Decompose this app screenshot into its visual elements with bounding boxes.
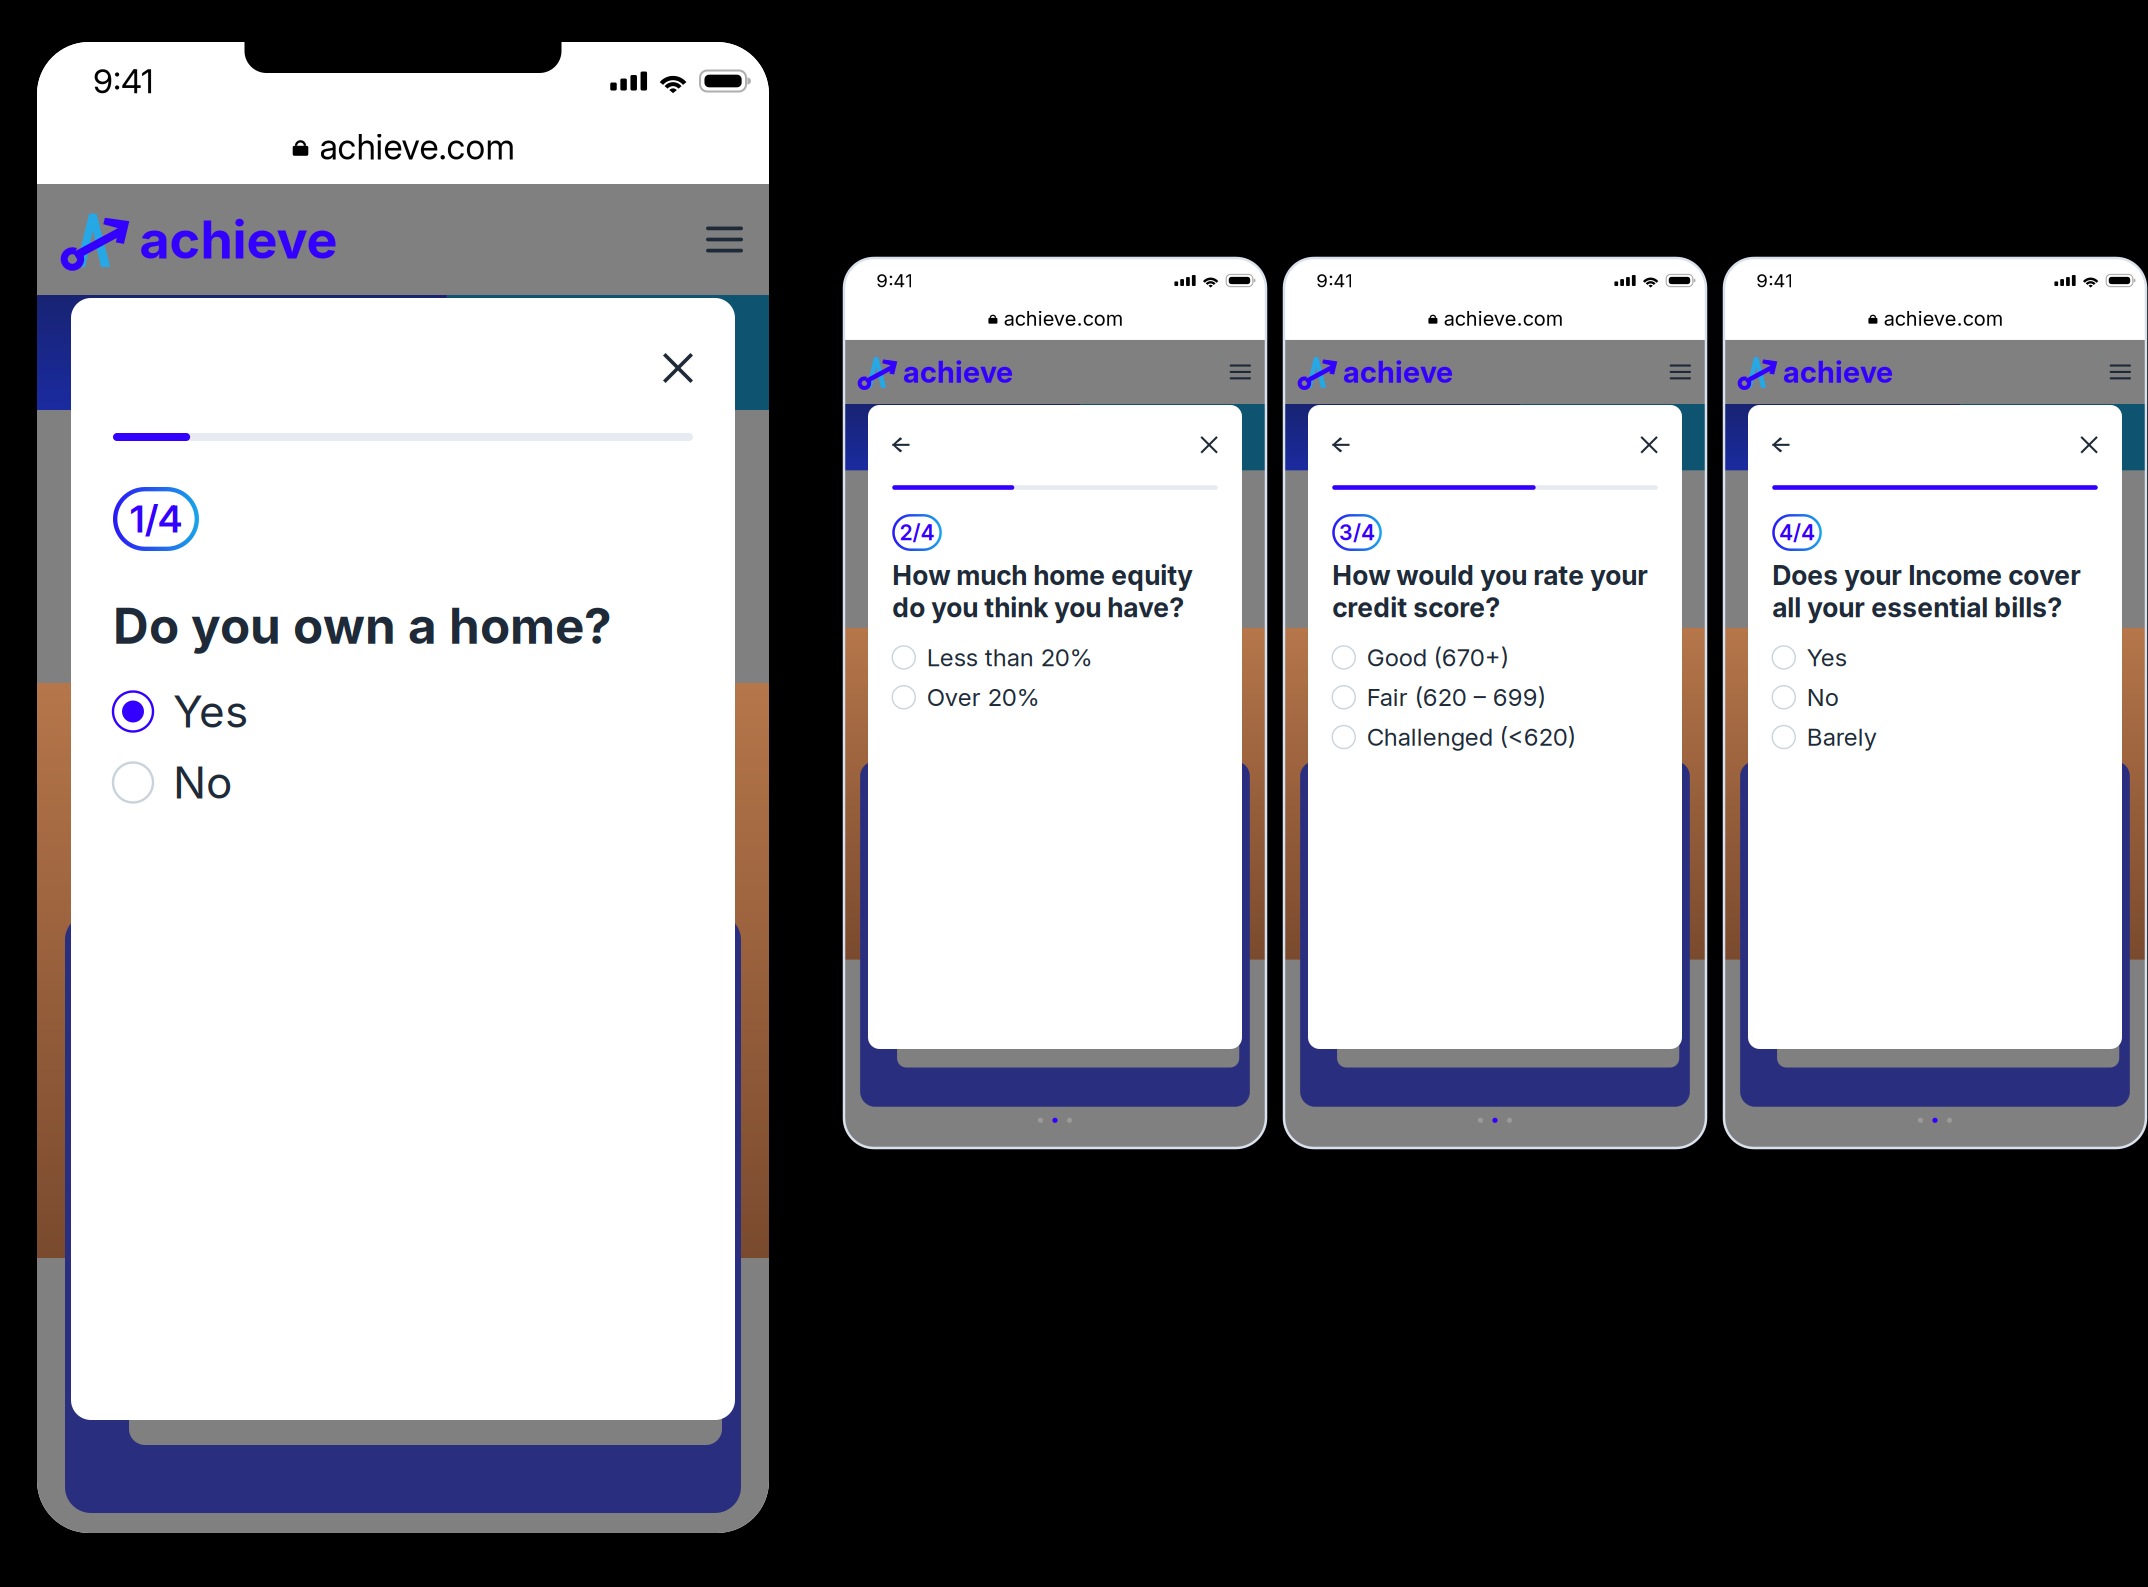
staticText: How would you rate your credit score? <box>1332 559 1648 624</box>
staticText: achieve.com <box>1444 306 1563 331</box>
staticText: Fair (620 – 699) <box>1367 683 1546 712</box>
button[interactable]: Good (670+) <box>1332 637 1658 677</box>
staticText: No <box>1807 683 1839 712</box>
staticText: No <box>173 756 232 809</box>
staticText: 4/4 <box>1779 520 1815 545</box>
staticText: Do you own a home? <box>113 596 612 656</box>
button[interactable]: Less than 20% <box>892 637 1218 677</box>
staticText: 2/4 <box>899 520 934 545</box>
button[interactable]: Close <box>2075 433 2098 456</box>
staticText: 3/4 <box>1339 520 1375 545</box>
staticText: achieve <box>903 354 1013 390</box>
staticText: Over 20% <box>927 683 1040 712</box>
button[interactable]: Over 20% <box>892 677 1218 717</box>
button[interactable]: Back <box>892 433 915 456</box>
staticText: 9:41 <box>876 269 913 292</box>
staticText: Yes <box>173 685 248 738</box>
staticText: achieve.com <box>319 126 515 168</box>
staticText: achieve <box>1783 354 1893 390</box>
staticText: Good (670+) <box>1367 643 1509 672</box>
staticText: Barely <box>1807 722 1877 751</box>
button[interactable]: Yes <box>113 676 693 747</box>
staticText: How much home equity do you think you ha… <box>892 559 1193 624</box>
button[interactable]: Close <box>1635 433 1658 456</box>
staticText: 1/4 <box>130 496 182 542</box>
button[interactable]: No <box>1772 677 2098 717</box>
button[interactable]: Yes <box>1772 637 2098 677</box>
staticText: 9:41 <box>1316 269 1353 292</box>
staticText: achieve.com <box>1004 306 1123 331</box>
staticText: Does your Income cover all your essentia… <box>1772 559 2081 624</box>
button[interactable]: Back <box>1332 433 1355 456</box>
staticText: Yes <box>1807 643 1847 672</box>
staticText: Challenged (<620) <box>1367 722 1576 751</box>
button[interactable]: Barely <box>1772 717 2098 757</box>
button[interactable]: Back <box>1772 433 1795 456</box>
staticText: achieve <box>139 208 337 271</box>
button[interactable]: Fair (620 – 699) <box>1332 677 1658 717</box>
staticText: 9:41 <box>93 61 154 101</box>
button[interactable]: Close <box>653 348 693 388</box>
staticText: achieve <box>1343 354 1453 390</box>
staticText: Less than 20% <box>927 643 1093 672</box>
staticText: 9:41 <box>1756 269 1793 292</box>
button[interactable]: Challenged (<620) <box>1332 717 1658 757</box>
button[interactable]: No <box>113 747 693 818</box>
staticText: achieve.com <box>1884 306 2003 331</box>
button[interactable]: Close <box>1195 433 1218 456</box>
